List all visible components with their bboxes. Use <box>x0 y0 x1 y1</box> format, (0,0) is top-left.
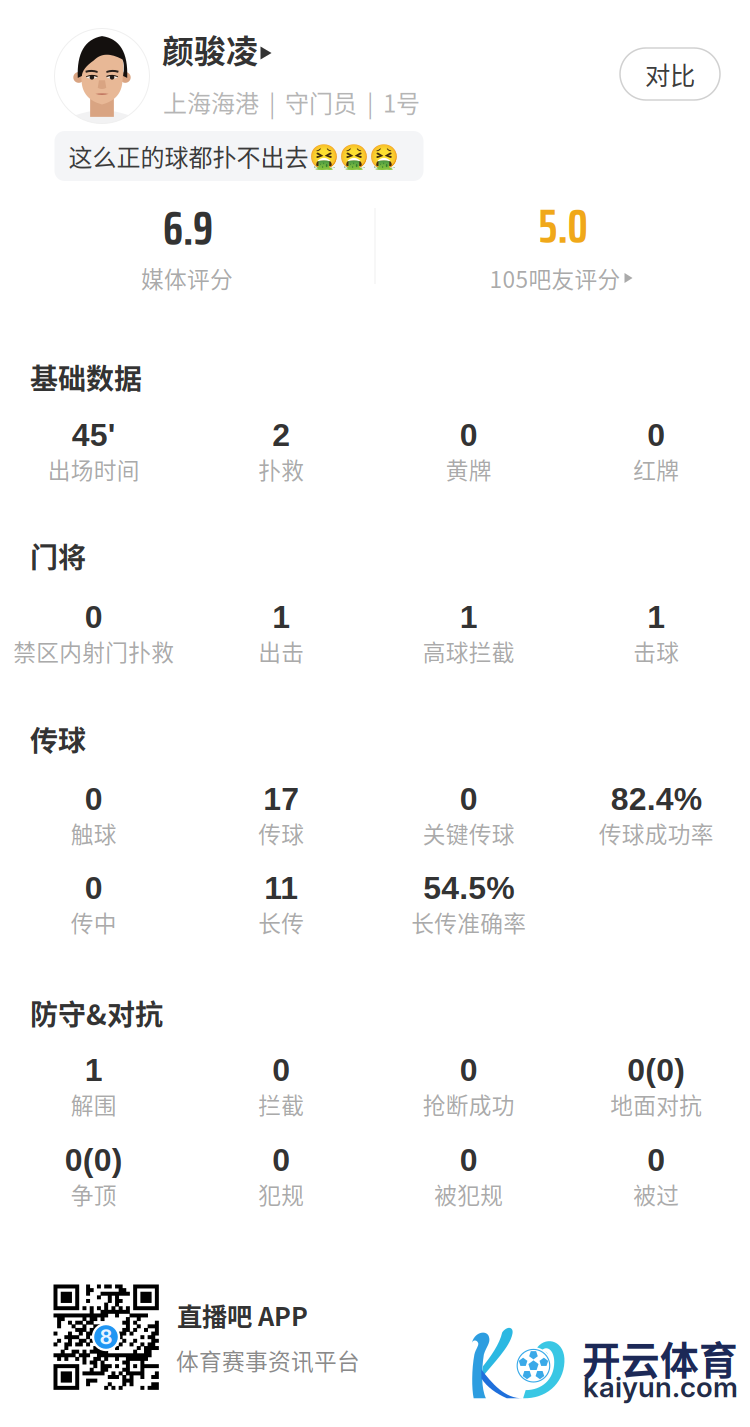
staticText: 0 <box>85 870 103 906</box>
staticText: 0 <box>460 781 478 817</box>
staticText: 54.5% <box>423 870 514 906</box>
staticText: 45' <box>72 417 116 453</box>
staticText: 关键传球 <box>423 817 515 849</box>
staticText: 地面对抗 <box>610 1088 702 1120</box>
staticText: 0 <box>85 599 103 635</box>
staticText: 传中 <box>71 906 117 938</box>
staticText: 体育赛事资讯平台 <box>176 1344 360 1376</box>
staticText: 防守&对抗 <box>30 993 163 1033</box>
staticText: 0 <box>272 1052 290 1088</box>
staticText: 17 <box>263 781 299 817</box>
staticText: 1 <box>272 599 290 635</box>
staticText: 2 <box>272 417 290 453</box>
staticText: 抢断成功 <box>423 1088 515 1120</box>
staticText: 门将 <box>30 536 86 576</box>
staticText: 上海海港 | 守门员 | 1号 <box>163 85 420 119</box>
staticText: 传球 <box>258 817 304 849</box>
staticText: 红牌 <box>633 453 679 485</box>
staticText: 被过 <box>633 1178 679 1210</box>
staticText: 这么正的球都扑不出去🤮🤮🤮 <box>68 139 398 173</box>
staticText: 直播吧 APP <box>177 1297 308 1333</box>
staticText: 0 <box>460 1142 478 1178</box>
staticText: 82.4% <box>611 781 702 817</box>
staticText: 1 <box>85 1052 103 1088</box>
staticText: kaiyun.com <box>583 1370 738 1404</box>
staticText: 黄牌 <box>446 453 492 485</box>
staticText: 长传准确率 <box>411 906 526 938</box>
staticText: 禁区内射门扑救 <box>13 635 174 667</box>
staticText: 5.0 <box>538 188 587 264</box>
staticText: 出击 <box>258 635 304 667</box>
staticText: 0(0) <box>627 1052 685 1088</box>
staticText: 0 <box>85 781 103 817</box>
staticText: 0(0) <box>65 1142 123 1178</box>
staticText: 基础数据 <box>30 357 142 397</box>
staticText: 传球成功率 <box>599 817 714 849</box>
staticText: 击球 <box>633 635 679 667</box>
staticText: 6.9 <box>163 190 213 266</box>
staticText: 1 <box>460 599 478 635</box>
staticText: 11 <box>264 870 298 906</box>
staticText: 出场时间 <box>48 453 140 485</box>
staticText: 开云体育 <box>582 1330 738 1386</box>
staticText: 争顶 <box>71 1178 117 1210</box>
staticText: 0 <box>460 1052 478 1088</box>
staticText: 媒体评分 <box>141 262 233 294</box>
staticText: 105吧友评分 <box>489 262 620 294</box>
staticText: 0 <box>272 1142 290 1178</box>
staticText: 0 <box>647 1142 665 1178</box>
staticText: 长传 <box>258 906 304 938</box>
staticText: 0 <box>647 417 665 453</box>
staticText: 扑救 <box>258 453 304 485</box>
staticText: 传球 <box>30 719 86 759</box>
staticText: 拦截 <box>258 1088 304 1120</box>
staticText: 被犯规 <box>434 1178 503 1210</box>
staticText: 高球拦截 <box>423 635 515 667</box>
button[interactable]: 对比 <box>620 48 720 100</box>
staticText: 对比 <box>645 56 695 92</box>
button[interactable]: 105吧友评分 <box>489 262 632 294</box>
staticText: 颜骏凌 <box>162 26 258 72</box>
staticText: 解围 <box>71 1088 117 1120</box>
staticText: 8 <box>99 1325 112 1349</box>
staticText: 1 <box>647 599 665 635</box>
staticText: 触球 <box>71 817 117 849</box>
staticText: 犯规 <box>258 1178 304 1210</box>
staticText: 0 <box>460 417 478 453</box>
